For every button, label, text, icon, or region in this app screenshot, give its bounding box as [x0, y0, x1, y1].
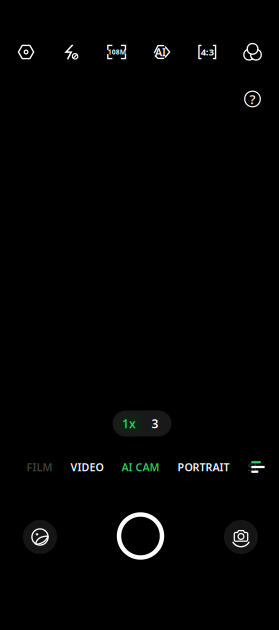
- button[interactable]: Gallery: [20, 517, 60, 557]
- staticText: 4:3: [201, 46, 214, 58]
- button[interactable]: VIDEO: [61, 456, 112, 478]
- staticText: PORTRAIT: [177, 460, 229, 474]
- staticText: SL: [247, 460, 259, 474]
- staticText: ?: [249, 90, 255, 108]
- button[interactable]: 108 megapixels: [94, 37, 139, 67]
- button[interactable]: FILM: [17, 456, 61, 478]
- button[interactable]: Take photo: [116, 512, 164, 560]
- button[interactable]: More camera modes: [246, 455, 270, 479]
- staticText: 108M: [108, 48, 126, 56]
- staticText: AI: [155, 45, 166, 59]
- button[interactable]: Aspect ratio 4 by 3: [185, 37, 230, 67]
- button[interactable]: Flash off: [49, 37, 94, 67]
- staticText: AI CAM: [121, 460, 159, 474]
- button[interactable]: PORTRAIT: [168, 456, 238, 478]
- button[interactable]: Colour filters: [230, 37, 275, 67]
- button[interactable]: Switch camera: [221, 517, 261, 557]
- staticText: FILM: [26, 460, 52, 474]
- button[interactable]: SL: [238, 456, 268, 478]
- button[interactable]: Help: [238, 85, 266, 113]
- staticText: 1x: [122, 415, 136, 431]
- button[interactable]: AI CAM: [112, 456, 168, 478]
- button[interactable]: 3: [142, 413, 168, 434]
- staticText: VIDEO: [70, 460, 103, 474]
- button[interactable]: AI scene detection: [139, 37, 185, 67]
- button[interactable]: Pro mode: [3, 37, 49, 67]
- staticText: 3: [151, 415, 158, 431]
- button[interactable]: 1x: [116, 413, 142, 434]
